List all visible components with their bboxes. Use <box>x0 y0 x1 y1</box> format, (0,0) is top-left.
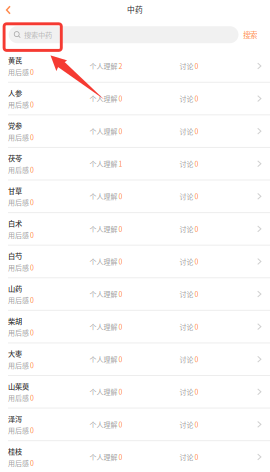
staticText: 搜索 <box>243 29 257 40</box>
staticText: 用后感 <box>8 458 29 468</box>
staticText: 用后感 <box>8 197 29 207</box>
staticText: 0 <box>194 354 198 364</box>
staticText: 0 <box>30 197 34 207</box>
staticText: 黄芪 <box>8 55 22 65</box>
staticText: 讨论 <box>179 126 193 136</box>
staticText: 0 <box>30 425 34 435</box>
staticText: 个人理解 <box>90 354 118 364</box>
staticText: 用后感 <box>8 295 29 305</box>
staticText: 山药 <box>8 283 22 293</box>
staticText: 个人理解 <box>90 452 118 462</box>
staticText: 0 <box>30 262 34 272</box>
staticText: 0 <box>119 289 123 299</box>
staticText: 中药 <box>127 4 143 15</box>
staticText: 0 <box>194 159 198 169</box>
button[interactable]: 茯苓 <box>0 148 270 180</box>
staticText: 茯苓 <box>8 153 22 163</box>
button[interactable]: 甘草 <box>0 180 270 213</box>
button[interactable]: 党参 <box>0 115 270 148</box>
staticText: 0 <box>119 419 123 429</box>
staticText: 用后感 <box>8 262 29 272</box>
staticText: 党参 <box>8 120 22 131</box>
staticText: 讨论 <box>179 93 193 103</box>
staticText: 个人理解 <box>90 93 118 103</box>
staticText: 白芍 <box>8 250 22 261</box>
staticText: 讨论 <box>179 256 193 266</box>
staticText: 个人理解 <box>90 289 118 299</box>
staticText: 个人理解 <box>90 322 118 332</box>
staticText: 0 <box>119 387 123 397</box>
staticText: 讨论 <box>179 419 193 429</box>
staticText: 0 <box>194 419 198 429</box>
button[interactable]: 搜索 <box>238 26 261 43</box>
staticText: 0 <box>30 328 34 338</box>
staticText: 讨论 <box>179 159 193 169</box>
button[interactable]: 山茱萸 <box>0 376 270 409</box>
staticText: 0 <box>119 126 123 136</box>
button[interactable]: 黄芪 <box>0 50 270 83</box>
staticText: 人参 <box>8 88 22 98</box>
staticText: 2 <box>119 61 123 71</box>
staticText: 柴胡 <box>8 316 22 326</box>
staticText: 讨论 <box>179 322 193 332</box>
staticText: 0 <box>194 61 198 71</box>
button[interactable]: 柴胡 <box>0 311 270 343</box>
staticText: 讨论 <box>179 452 193 462</box>
staticText: 个人理解 <box>90 224 118 234</box>
staticText: 0 <box>119 354 123 364</box>
staticText: 用后感 <box>8 360 29 370</box>
staticText: 大枣 <box>8 348 22 359</box>
staticText: 0 <box>119 224 123 234</box>
staticText: 个人理解 <box>90 256 118 266</box>
staticText: 白术 <box>8 218 22 228</box>
button[interactable]: 桂枝 <box>0 441 270 472</box>
staticText: 讨论 <box>179 387 193 397</box>
staticText: 用后感 <box>8 165 29 175</box>
staticText: 泽泻 <box>8 413 22 424</box>
staticText: 个人理解 <box>90 419 118 429</box>
staticText: 搜索中药 <box>24 29 52 40</box>
staticText: 讨论 <box>179 61 193 71</box>
staticText: 0 <box>194 224 198 234</box>
staticText: 用后感 <box>8 99 29 109</box>
staticText: 讨论 <box>179 289 193 299</box>
staticText: 0 <box>30 132 34 142</box>
staticText: 讨论 <box>179 191 193 201</box>
staticText: 用后感 <box>8 132 29 142</box>
staticText: 0 <box>30 165 34 175</box>
staticText: 0 <box>119 93 123 103</box>
staticText: 讨论 <box>179 224 193 234</box>
staticText: 0 <box>119 452 123 462</box>
button[interactable]: 人参 <box>0 83 270 115</box>
staticText: 0 <box>119 322 123 332</box>
staticText: 个人理解 <box>90 191 118 201</box>
button[interactable]: 返回 <box>0 0 15 19</box>
staticText: 山茱萸 <box>8 381 29 391</box>
staticText: 0 <box>194 322 198 332</box>
staticText: 讨论 <box>179 354 193 364</box>
staticText: 0 <box>30 458 34 468</box>
staticText: 个人理解 <box>90 387 118 397</box>
staticText: 桂枝 <box>8 446 22 456</box>
staticText: 0 <box>30 360 34 370</box>
staticText: 个人理解 <box>90 126 118 136</box>
staticText: 0 <box>30 295 34 305</box>
staticText: 0 <box>30 99 34 109</box>
button[interactable]: 白术 <box>0 213 270 246</box>
button[interactable]: 泽泻 <box>0 409 270 441</box>
staticText: 1 <box>119 159 123 169</box>
staticText: 0 <box>194 256 198 266</box>
staticText: 0 <box>30 393 34 403</box>
staticText: 0 <box>194 289 198 299</box>
staticText: 用后感 <box>8 425 29 435</box>
button[interactable]: 白芍 <box>0 246 270 278</box>
staticText: 甘草 <box>8 185 22 196</box>
staticText: 0 <box>30 67 34 77</box>
staticText: 0 <box>194 191 198 201</box>
staticText: 用后感 <box>8 67 29 77</box>
button[interactable]: 大枣 <box>0 343 270 376</box>
staticText: 0 <box>194 126 198 136</box>
staticText: 0 <box>194 387 198 397</box>
staticText: 用后感 <box>8 328 29 338</box>
button[interactable]: 山药 <box>0 278 270 311</box>
